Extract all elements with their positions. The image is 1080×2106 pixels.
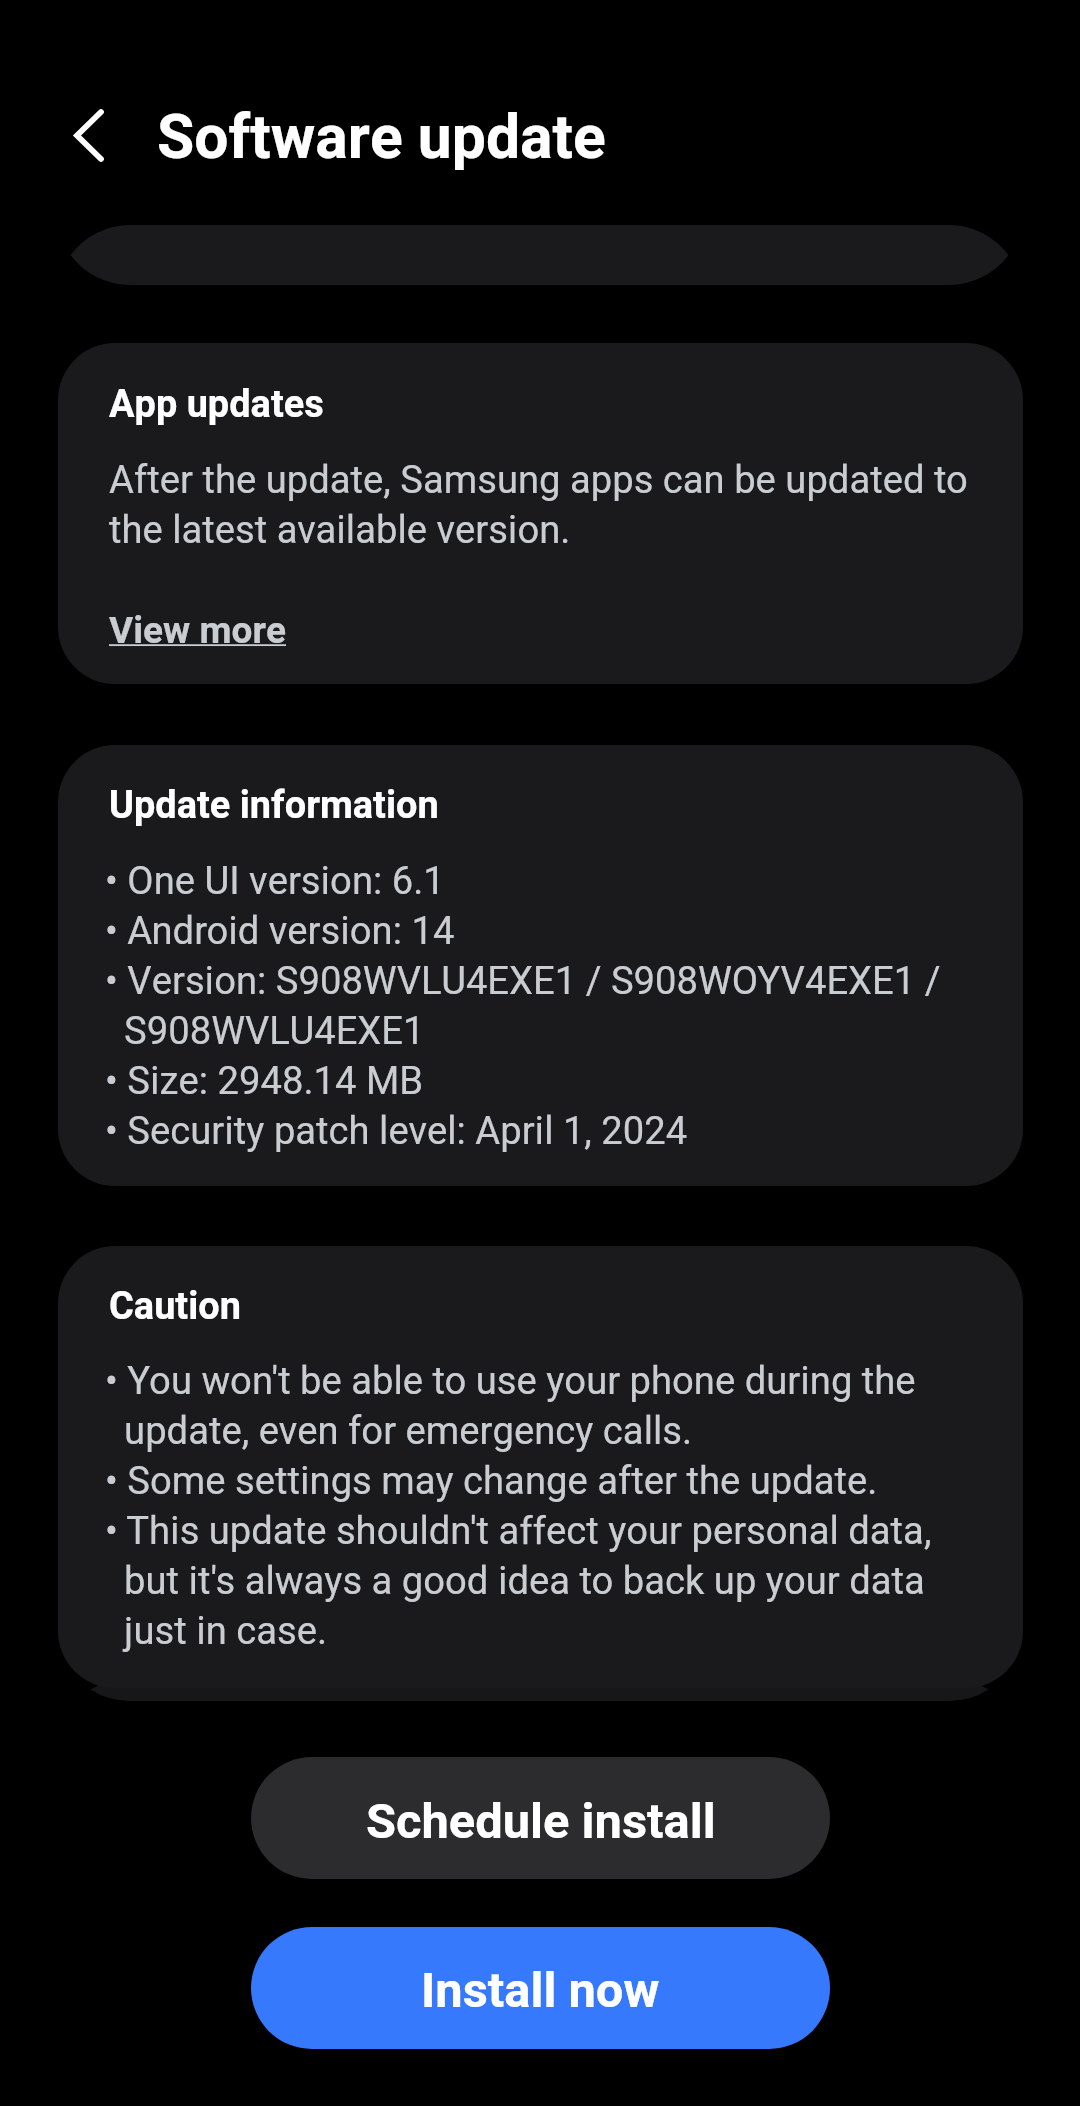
- staticText: Schedule install: [366, 1787, 716, 1859]
- staticText: Install now: [421, 1956, 660, 2028]
- button[interactable]: View more: [109, 604, 287, 658]
- staticText: Software update: [157, 95, 606, 184]
- staticText: App updates: [109, 377, 324, 433]
- staticText: • One UI version: 6.1 • Android version:…: [105, 854, 941, 1160]
- staticText: Caution: [109, 1279, 241, 1335]
- button[interactable]: Install now: [251, 1927, 830, 2049]
- staticText: Update information: [109, 778, 439, 834]
- staticText: After the update, Samsung apps can be up…: [109, 453, 968, 559]
- button[interactable]: Back: [52, 88, 148, 184]
- staticText: • You won't be able to use your phone du…: [105, 1354, 932, 1660]
- staticText: View more: [109, 604, 287, 658]
- button[interactable]: Schedule install: [251, 1757, 830, 1879]
